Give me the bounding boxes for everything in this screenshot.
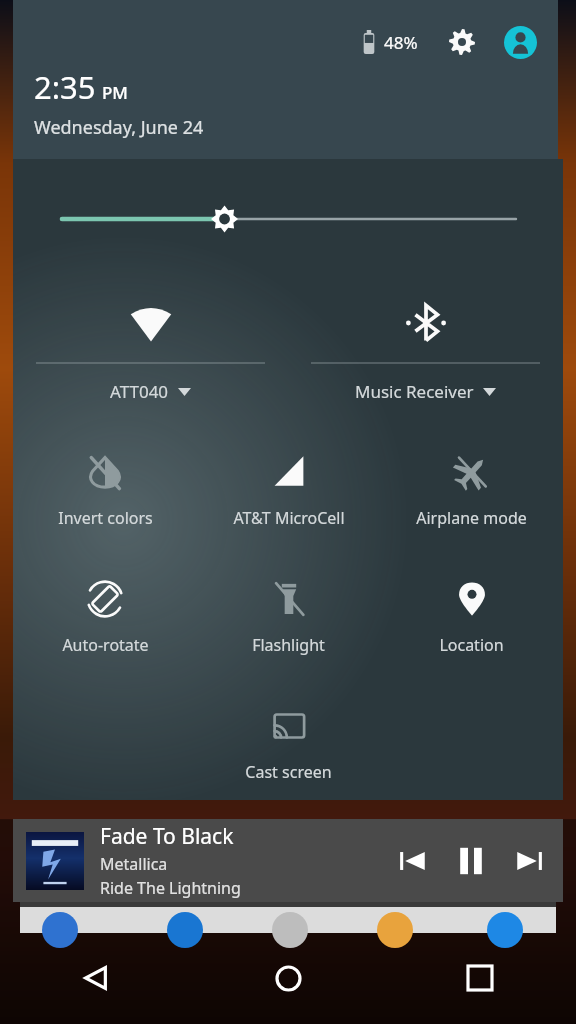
button[interactable]: Pause [441, 831, 501, 891]
staticText: Location [439, 634, 504, 656]
button[interactable]: Previous track [385, 833, 441, 889]
button[interactable]: Settings [442, 22, 482, 62]
button[interactable]: Home [256, 946, 320, 1010]
staticText: Invert colors [58, 507, 153, 529]
staticText: 48% [384, 31, 418, 54]
button[interactable]: Recent apps [448, 946, 512, 1010]
button[interactable]: AT&T MicroCell [197, 440, 380, 529]
staticText: Flashlight [252, 634, 325, 656]
button[interactable]: User profile [500, 22, 540, 62]
staticText: Music Receiver [355, 380, 474, 403]
staticText: Fade To Black [100, 822, 234, 851]
staticText: Metallica [100, 853, 168, 875]
button[interactable]: Fade To Black [13, 819, 563, 902]
staticText: AT&T MicroCell [233, 507, 345, 529]
staticText: 2:35 [34, 66, 96, 108]
button[interactable]: Invert colors [13, 440, 197, 529]
button[interactable]: Next track [501, 833, 557, 889]
staticText: Airplane mode [416, 507, 527, 529]
staticText: ATT040 [110, 380, 169, 403]
staticText: Auto-rotate [62, 634, 149, 656]
button[interactable]: Location [380, 567, 563, 656]
button[interactable]: Auto-rotate [13, 567, 197, 656]
staticText: Cast screen [245, 761, 332, 783]
staticText: Ride The Lightning [100, 877, 241, 899]
button[interactable]: Back [64, 946, 128, 1010]
button[interactable]: Cast screen [197, 694, 380, 783]
staticText: Wednesday, June 24 [34, 115, 204, 140]
staticText: PM [102, 81, 128, 104]
button[interactable]: Music Receiver [288, 277, 563, 403]
button[interactable]: Airplane mode [380, 440, 563, 529]
button[interactable]: Brightness [13, 201, 563, 237]
button[interactable]: Flashlight [197, 567, 380, 656]
button[interactable]: ATT040 [13, 277, 288, 403]
